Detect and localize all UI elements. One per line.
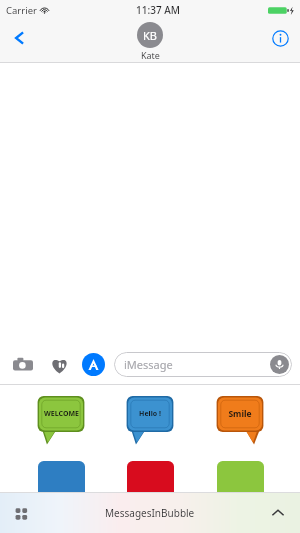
staticText: Hello ! [139, 409, 161, 419]
button[interactable]: App drawer [8, 499, 36, 527]
staticText: MessagesInBubble [105, 506, 195, 520]
button[interactable]: Expand [264, 499, 292, 527]
button[interactable]: Back [4, 22, 36, 54]
staticText: Carrier [6, 4, 37, 17]
button[interactable]: Camera [10, 352, 36, 378]
button[interactable]: Hello ! [121, 396, 179, 448]
button[interactable] [121, 461, 179, 501]
button[interactable]: App Store [82, 353, 105, 376]
button[interactable]: WELCOME [32, 396, 90, 448]
staticText: 11:37 AM [136, 3, 180, 17]
staticText: Kate [141, 49, 160, 61]
staticText: WELCOME [44, 409, 79, 419]
button[interactable]: iMessage [114, 352, 292, 377]
button[interactable] [32, 461, 90, 501]
button[interactable]: Details [266, 24, 294, 52]
button[interactable]: Digital Touch [46, 352, 72, 378]
staticText: Smile [228, 408, 252, 420]
staticText: iMessage [124, 357, 173, 372]
button[interactable]: KB [137, 22, 163, 61]
other: Dictate [270, 355, 289, 374]
button[interactable] [211, 461, 269, 501]
button[interactable]: Smile [211, 396, 269, 448]
staticText: KB [143, 28, 157, 43]
